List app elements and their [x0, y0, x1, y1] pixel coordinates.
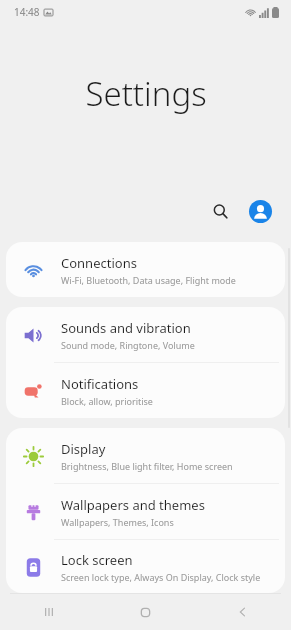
button[interactable]: Home [97, 594, 194, 630]
staticText: Wallpapers and themes [61, 496, 205, 514]
button[interactable]: Recents [0, 594, 97, 630]
button[interactable]: Lock screen [6, 540, 285, 593]
staticText: Block, allow, prioritise [61, 395, 153, 407]
staticText: Sounds and vibration [61, 319, 191, 337]
staticText: Lock screen [61, 551, 133, 569]
staticText: Connections [61, 254, 137, 272]
staticText: Display [61, 440, 106, 458]
button[interactable]: Search [203, 194, 237, 228]
staticText: 14:48 [14, 5, 40, 19]
staticText: Screen lock type, Always On Display, Clo… [61, 571, 261, 583]
button[interactable]: Sounds and vibration [6, 307, 285, 362]
staticText: Notifications [61, 375, 139, 393]
button[interactable]: Back [194, 594, 291, 630]
button[interactable]: Display [6, 428, 285, 483]
staticText: Wallpapers, Themes, Icons [61, 516, 174, 528]
button[interactable]: Wallpapers and themes [6, 484, 285, 539]
staticText: Sound mode, Ringtone, Volume [61, 339, 195, 351]
button[interactable]: Account [243, 194, 277, 228]
staticText: Brightness, Blue light filter, Home scre… [61, 460, 233, 472]
staticText: Settings [85, 71, 207, 116]
button[interactable]: Notifications [6, 363, 285, 418]
button[interactable]: Connections [6, 242, 285, 297]
staticText: Wi-Fi, Bluetooth, Data usage, Flight mod… [61, 274, 236, 286]
